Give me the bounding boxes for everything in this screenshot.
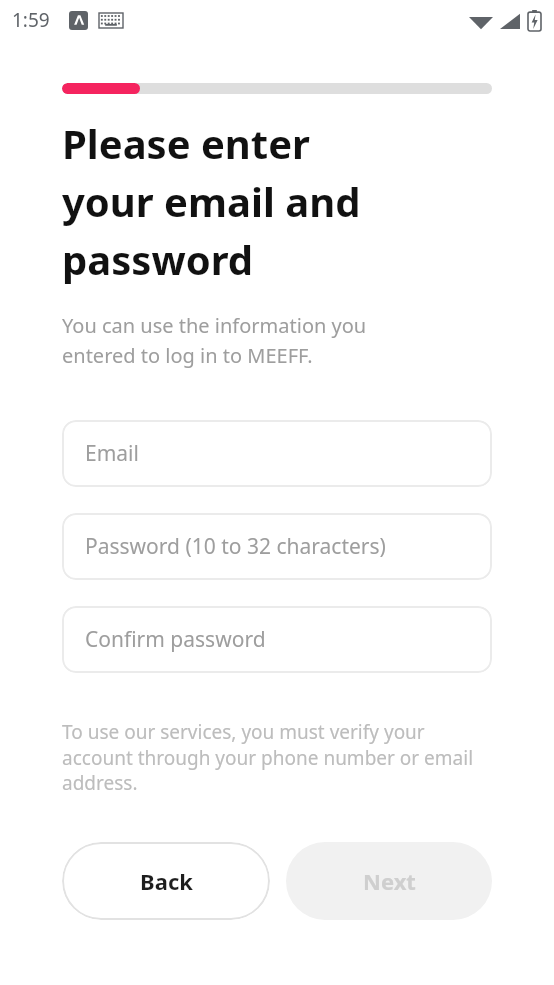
staticText: Confirm password xyxy=(85,625,266,654)
staticText: To use our services, you must verify you… xyxy=(62,719,474,795)
staticText: Back xyxy=(140,866,193,896)
staticText: You can use the information you entered … xyxy=(62,312,367,369)
staticText: Please enter your email and password xyxy=(62,116,361,286)
staticText: Email xyxy=(85,439,139,468)
button[interactable]: Email xyxy=(62,420,492,487)
button[interactable]: Back xyxy=(62,842,270,920)
button[interactable]: Password (10 to 32 characters) xyxy=(62,513,492,580)
button[interactable]: Next xyxy=(286,842,492,920)
button[interactable]: Confirm password xyxy=(62,606,492,673)
staticText: 1:59 xyxy=(12,7,50,33)
staticText: Password (10 to 32 characters) xyxy=(85,532,386,561)
staticText: Next xyxy=(363,866,416,896)
